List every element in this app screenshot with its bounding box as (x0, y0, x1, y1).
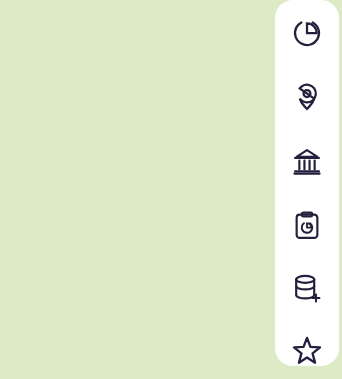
button[interactable]: Clipboard report (290, 208, 324, 242)
button[interactable]: Bank (290, 144, 324, 178)
button[interactable]: Add database (290, 272, 324, 306)
button[interactable]: Favorites (290, 336, 324, 366)
button[interactable]: Locations (290, 80, 324, 114)
button[interactable]: Reports (290, 16, 324, 50)
